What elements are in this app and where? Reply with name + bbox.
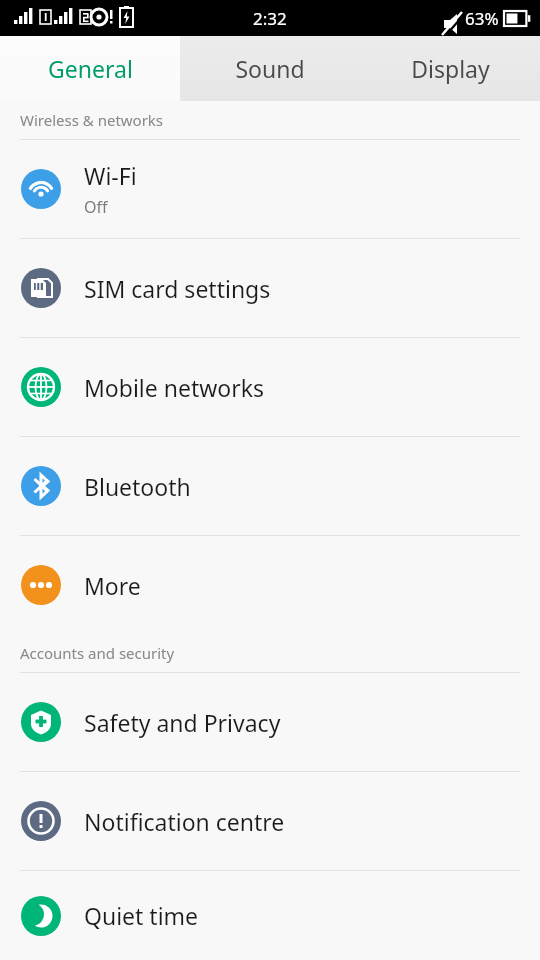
button[interactable]: Quiet time [0, 871, 540, 960]
button[interactable]: SIM card settings [0, 239, 540, 337]
staticText: 2:32 [253, 7, 287, 30]
other: Safety and Privacy [21, 702, 61, 742]
other: Quiet time [21, 896, 61, 936]
button[interactable]: Bluetooth [0, 437, 540, 535]
staticText: Off [84, 196, 108, 218]
button[interactable]: Notification centre [0, 772, 540, 870]
button[interactable]: Mobile networks [0, 338, 540, 436]
other: Mobile networks [21, 367, 61, 407]
staticText: Quiet time [84, 900, 199, 931]
staticText: Notification centre [84, 806, 285, 837]
button[interactable]: Safety and Privacy [0, 673, 540, 771]
staticText: General [48, 53, 133, 84]
staticText: Accounts and security [20, 643, 175, 663]
staticText: 63% [465, 7, 499, 30]
button[interactable]: Sound [180, 36, 360, 101]
other: Notification centre [21, 801, 61, 841]
staticText: Mobile networks [84, 372, 265, 403]
staticText: SIM card settings [84, 273, 271, 304]
staticText: Wireless & networks [20, 110, 164, 130]
staticText: Sound [235, 53, 305, 84]
button[interactable]: Display [360, 36, 540, 101]
other: Wi-Fi [21, 169, 61, 209]
other: More [21, 565, 61, 605]
staticText: More [84, 570, 141, 601]
button[interactable]: General [0, 36, 180, 101]
staticText: Safety and Privacy [84, 707, 281, 738]
button[interactable]: More [0, 536, 540, 634]
other: SIM card settings [21, 268, 61, 308]
staticText: Bluetooth [84, 471, 191, 502]
staticText: Display [411, 53, 490, 84]
other: Bluetooth [21, 466, 61, 506]
button[interactable]: Wi-Fi [0, 140, 540, 238]
staticText: Wi-Fi [84, 160, 137, 191]
